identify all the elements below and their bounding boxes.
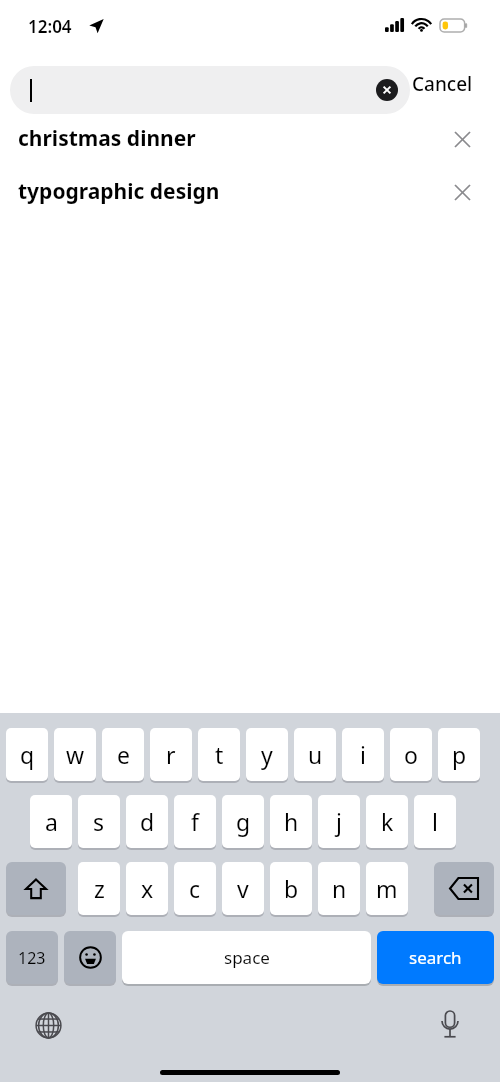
staticText: space xyxy=(224,946,270,969)
button[interactable]: o xyxy=(390,728,432,781)
button[interactable]: u xyxy=(294,728,336,781)
button[interactable]: search xyxy=(377,931,494,984)
button[interactable]: Clear text xyxy=(376,79,398,101)
button[interactable]: m xyxy=(366,862,408,915)
button[interactable]: Dictate xyxy=(430,1005,470,1045)
staticText: typographic design xyxy=(18,177,220,206)
staticText: j xyxy=(336,806,342,837)
staticText: t xyxy=(215,739,224,770)
staticText: christmas dinner xyxy=(18,124,196,153)
staticText: b xyxy=(284,873,299,904)
button[interactable]: j xyxy=(318,795,360,848)
staticText: q xyxy=(20,739,35,770)
button[interactable]: d xyxy=(126,795,168,848)
button[interactable]: v xyxy=(222,862,264,915)
button[interactable]: christmas dinner xyxy=(0,112,500,165)
staticText: h xyxy=(284,806,299,837)
staticText: n xyxy=(332,873,347,904)
button[interactable]: a xyxy=(30,795,72,848)
staticText: Cancel xyxy=(412,71,473,97)
button[interactable]: q xyxy=(6,728,48,781)
button[interactable]: space xyxy=(122,931,371,984)
button[interactable]: Backspace xyxy=(434,862,494,915)
button[interactable]: f xyxy=(174,795,216,848)
button[interactable]: z xyxy=(78,862,120,915)
staticText: i xyxy=(360,739,366,770)
staticText: w xyxy=(66,739,85,770)
button[interactable]: h xyxy=(270,795,312,848)
button[interactable]: y xyxy=(246,728,288,781)
staticText: a xyxy=(45,806,58,837)
staticText: search xyxy=(409,946,462,969)
staticText: 12:04 xyxy=(28,15,72,38)
staticText: 123 xyxy=(18,947,46,969)
button[interactable]: typographic design xyxy=(0,165,500,218)
staticText: c xyxy=(189,873,201,904)
staticText: x xyxy=(141,873,154,904)
button[interactable]: Change keyboard language xyxy=(28,1005,68,1045)
button[interactable]: i xyxy=(342,728,384,781)
button[interactable]: e xyxy=(102,728,144,781)
button[interactable]: Clear text xyxy=(10,66,410,114)
button[interactable]: s xyxy=(78,795,120,848)
staticText: k xyxy=(381,806,394,837)
button[interactable]: x xyxy=(126,862,168,915)
staticText: r xyxy=(166,739,176,770)
staticText: z xyxy=(94,873,105,904)
button[interactable]: r xyxy=(150,728,192,781)
staticText: p xyxy=(452,739,467,770)
button[interactable]: k xyxy=(366,795,408,848)
staticText: g xyxy=(236,806,251,837)
button[interactable]: l xyxy=(414,795,456,848)
staticText: e xyxy=(117,739,130,770)
staticText: f xyxy=(191,806,199,837)
staticText: o xyxy=(404,739,418,770)
button[interactable]: Remove christmas dinner xyxy=(450,127,474,151)
button[interactable]: p xyxy=(438,728,480,781)
button[interactable]: Shift xyxy=(6,862,66,915)
button[interactable]: Emoji xyxy=(64,931,116,984)
staticText: s xyxy=(93,806,105,837)
button[interactable]: c xyxy=(174,862,216,915)
button[interactable]: g xyxy=(222,795,264,848)
staticText: v xyxy=(237,873,249,904)
staticText: l xyxy=(432,806,438,837)
staticText: u xyxy=(308,739,323,770)
button[interactable]: Cancel xyxy=(412,56,500,112)
button[interactable]: w xyxy=(54,728,96,781)
staticText: m xyxy=(376,873,398,904)
button[interactable]: Remove typographic design xyxy=(450,180,474,204)
button[interactable]: n xyxy=(318,862,360,915)
button[interactable]: t xyxy=(198,728,240,781)
staticText: d xyxy=(140,806,155,837)
staticText: y xyxy=(261,739,273,770)
button[interactable]: b xyxy=(270,862,312,915)
button[interactable]: Numbers xyxy=(6,931,58,984)
